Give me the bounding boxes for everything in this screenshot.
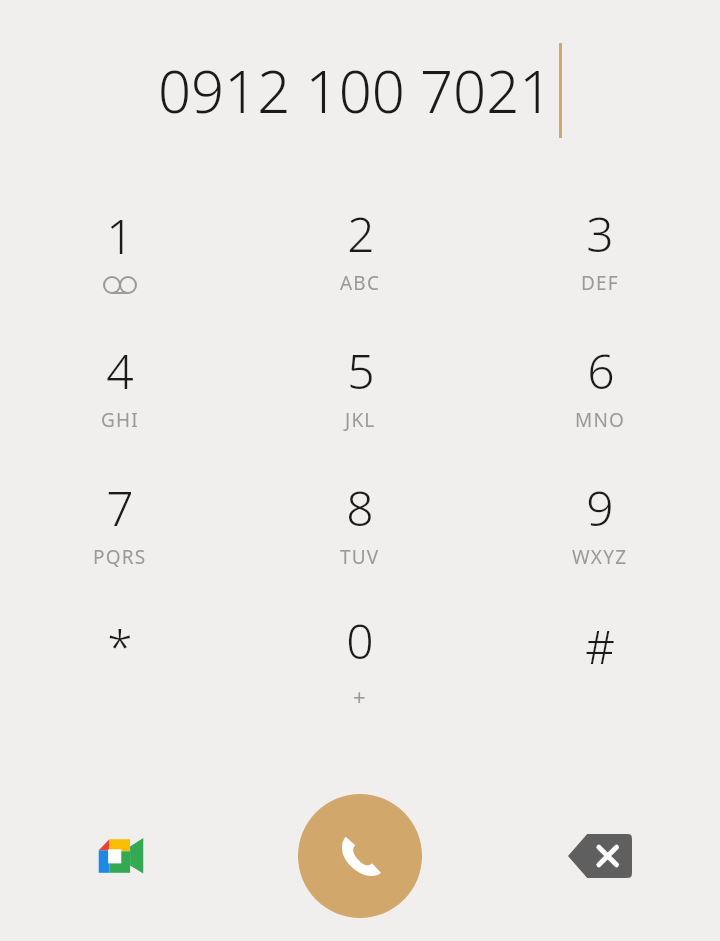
button[interactable]: 5 (240, 317, 480, 454)
button[interactable]: 6 (480, 317, 720, 454)
staticText: GHI (101, 407, 139, 433)
button[interactable]: * (0, 591, 240, 728)
button[interactable]: 1 (0, 180, 240, 317)
button[interactable]: 9 (480, 454, 720, 591)
staticText: + (353, 681, 367, 711)
staticText: ABC (340, 270, 381, 296)
button[interactable]: 8 (240, 454, 480, 591)
staticText: * (107, 615, 133, 678)
button[interactable]: 4 (0, 317, 240, 454)
staticText: 5 (347, 338, 375, 403)
button[interactable]: 3 (480, 180, 720, 317)
button[interactable]: 2 (240, 180, 480, 317)
staticText: PQRS (93, 544, 147, 570)
staticText: 6 (587, 338, 615, 403)
staticText: 4 (106, 338, 134, 403)
staticText: WXYZ (572, 544, 628, 570)
staticText: 0 (346, 608, 374, 673)
staticText: MNO (575, 407, 626, 433)
button[interactable]: 0 (240, 591, 480, 728)
button[interactable]: 7 (0, 454, 240, 591)
staticText: TUV (340, 544, 380, 570)
button[interactable]: Call (298, 794, 422, 918)
staticText: JKL (345, 407, 376, 433)
staticText: 8 (346, 475, 374, 540)
staticText: 7 (106, 475, 134, 540)
staticText: 1 (106, 203, 134, 268)
staticText: DEF (581, 270, 619, 296)
staticText: 0912 100 7021 (158, 51, 553, 130)
staticText: 9 (586, 475, 614, 540)
staticText: 3 (586, 201, 614, 266)
button[interactable]: Backspace (480, 771, 720, 941)
staticText: 2 (347, 201, 375, 266)
staticText: # (585, 615, 615, 678)
button[interactable]: # (480, 591, 720, 728)
button[interactable]: Video call with Meet (0, 771, 240, 941)
